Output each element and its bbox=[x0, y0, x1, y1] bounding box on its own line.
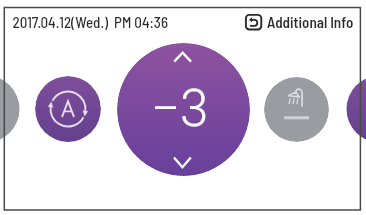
button[interactable]: Auto mode bbox=[35, 76, 101, 142]
button[interactable]: Shower mode bbox=[264, 77, 329, 142]
button[interactable] bbox=[241, 9, 357, 35]
button[interactable]: Temperature -3 bbox=[117, 43, 250, 176]
